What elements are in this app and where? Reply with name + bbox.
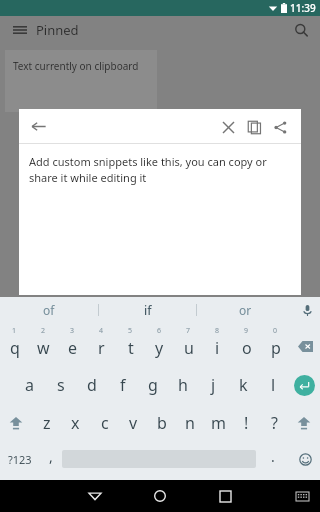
button[interactable]: 7: [174, 323, 203, 366]
button[interactable]: Close: [215, 114, 241, 140]
button[interactable]: z: [32, 404, 61, 442]
staticText: p: [271, 337, 281, 359]
button[interactable]: x: [61, 404, 90, 442]
staticText: r: [98, 337, 105, 359]
staticText: e: [68, 337, 78, 359]
staticText: u: [184, 337, 194, 359]
staticText: Pinned: [36, 21, 79, 39]
button[interactable]: Copy: [241, 114, 267, 140]
staticText: s: [57, 374, 65, 396]
button[interactable]: b: [148, 404, 176, 442]
button[interactable]: 2: [29, 323, 58, 366]
staticText: 2: [41, 326, 46, 336]
staticText: w: [37, 337, 50, 359]
staticText: m: [211, 412, 226, 434]
staticText: if: [144, 302, 152, 318]
button[interactable]: 6: [145, 323, 174, 366]
button[interactable]: s: [45, 366, 76, 404]
staticText: k: [239, 374, 248, 396]
staticText: g: [148, 374, 158, 396]
button[interactable]: or: [197, 297, 294, 323]
staticText: j: [211, 374, 216, 396]
staticText: z: [43, 412, 51, 434]
staticText: 4: [99, 326, 104, 336]
staticText: v: [129, 412, 138, 434]
staticText: i: [215, 337, 220, 359]
button[interactable]: v: [119, 404, 148, 442]
staticText: 11:39: [290, 1, 316, 15]
button[interactable]: if: [99, 297, 196, 323]
button[interactable]: Share: [267, 114, 293, 140]
button[interactable]: Switch keyboard: [290, 484, 314, 508]
staticText: of: [43, 302, 55, 318]
button[interactable]: a: [14, 366, 45, 404]
button[interactable]: Backspace: [290, 323, 320, 366]
staticText: Text currently on clipboard: [13, 59, 139, 73]
staticText: l: [271, 374, 276, 396]
button[interactable]: h: [168, 366, 198, 404]
staticText: f: [120, 374, 126, 396]
button[interactable]: 4: [87, 323, 116, 366]
button[interactable]: ?123: [0, 442, 40, 476]
button[interactable]: .: [256, 442, 290, 476]
staticText: y: [155, 337, 164, 359]
staticText: Add custom snippets like this, you can c…: [29, 154, 291, 185]
button[interactable]: 5: [116, 323, 145, 366]
staticText: ?123: [8, 452, 32, 467]
button[interactable]: Shift: [288, 404, 320, 442]
staticText: 7: [186, 326, 191, 336]
button[interactable]: Voice input: [294, 297, 320, 323]
button[interactable]: Back: [30, 118, 47, 135]
button[interactable]: k: [228, 366, 258, 404]
button[interactable]: of: [0, 297, 98, 323]
other: Search: [294, 23, 309, 38]
staticText: ,: [49, 447, 53, 466]
staticText: a: [25, 374, 34, 396]
staticText: ?: [271, 412, 278, 434]
button[interactable]: f: [107, 366, 138, 404]
staticText: 1: [12, 326, 17, 336]
staticText: d: [87, 374, 97, 396]
staticText: !: [244, 412, 249, 434]
button[interactable]: Home: [145, 481, 175, 511]
staticText: b: [157, 412, 167, 434]
button[interactable]: Shift: [0, 404, 32, 442]
button[interactable]: 0: [261, 323, 290, 366]
button[interactable]: Emoji: [290, 442, 320, 476]
button[interactable]: d: [76, 366, 107, 404]
staticText: 6: [157, 326, 162, 336]
button[interactable]: ,: [40, 442, 62, 476]
button[interactable]: !: [232, 404, 260, 442]
staticText: 0: [273, 326, 278, 336]
staticText: 5: [128, 326, 133, 336]
staticText: t: [128, 337, 134, 359]
button[interactable]: n: [176, 404, 204, 442]
button[interactable]: j: [198, 366, 228, 404]
staticText: o: [242, 337, 252, 359]
button[interactable]: ?: [260, 404, 288, 442]
button[interactable]: Back: [80, 481, 110, 511]
other: Menu: [12, 22, 28, 38]
button[interactable]: c: [90, 404, 119, 442]
button[interactable]: g: [138, 366, 168, 404]
button[interactable]: 8: [203, 323, 232, 366]
staticText: or: [239, 302, 252, 318]
staticText: n: [185, 412, 195, 434]
staticText: .: [271, 447, 275, 466]
button[interactable]: l: [258, 366, 288, 404]
button[interactable]: Text currently on clipboard: [5, 50, 157, 112]
staticText: q: [10, 337, 20, 359]
button[interactable]: 1: [0, 323, 29, 366]
button[interactable]: 9: [232, 323, 261, 366]
staticText: 8: [215, 326, 220, 336]
staticText: 9: [244, 326, 249, 336]
button[interactable]: m: [204, 404, 232, 442]
button[interactable]: Enter: [288, 366, 320, 404]
staticText: x: [71, 412, 80, 434]
staticText: c: [101, 412, 109, 434]
staticText: h: [178, 374, 188, 396]
staticText: 3: [70, 326, 75, 336]
button[interactable]: 3: [58, 323, 87, 366]
button[interactable]: Recents: [210, 481, 240, 511]
